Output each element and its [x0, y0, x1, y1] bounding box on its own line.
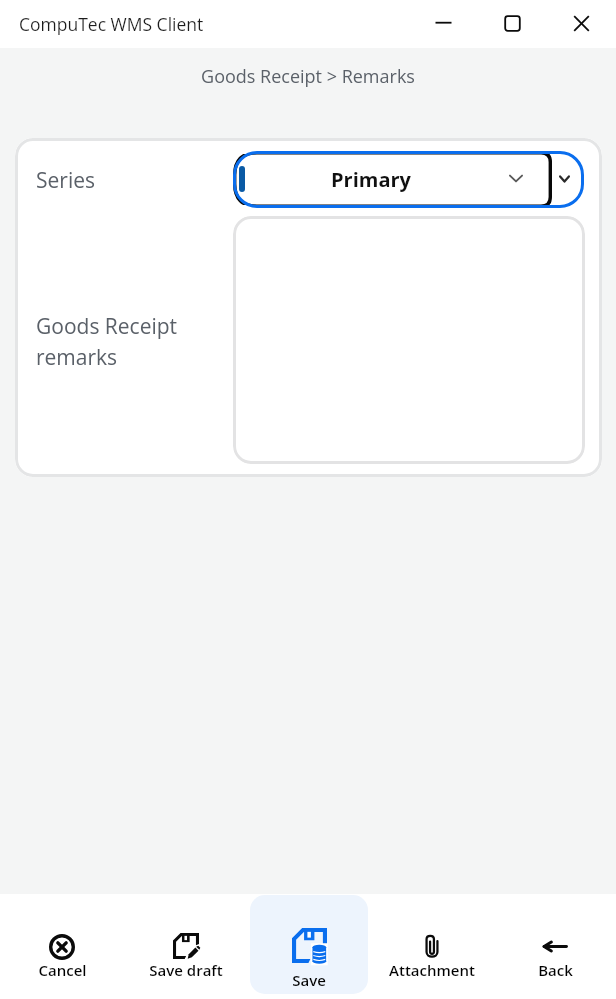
staticText: Cancel — [38, 960, 87, 980]
button[interactable] — [233, 216, 585, 464]
staticText: Primary — [331, 166, 411, 193]
staticText: Series — [36, 166, 95, 195]
button[interactable]: Maximize — [478, 0, 547, 47]
staticText: Save — [292, 970, 326, 990]
staticText: Goods Receipt remarks — [36, 312, 178, 371]
button[interactable]: Primary — [233, 151, 584, 208]
staticText: CompuTec WMS Client — [19, 12, 204, 36]
button[interactable]: Close — [547, 0, 616, 47]
button[interactable]: Attachment — [373, 895, 491, 994]
button[interactable]: Back — [496, 895, 614, 994]
button[interactable]: Save draft — [127, 895, 245, 994]
staticText: Back — [538, 960, 573, 980]
staticText: Goods Receipt > Remarks — [0, 64, 616, 89]
staticText: Save draft — [149, 960, 223, 980]
button[interactable]: Cancel — [3, 895, 121, 994]
button[interactable]: Save — [250, 895, 368, 994]
button[interactable]: Minimize — [409, 0, 478, 47]
staticText: Attachment — [389, 960, 475, 980]
